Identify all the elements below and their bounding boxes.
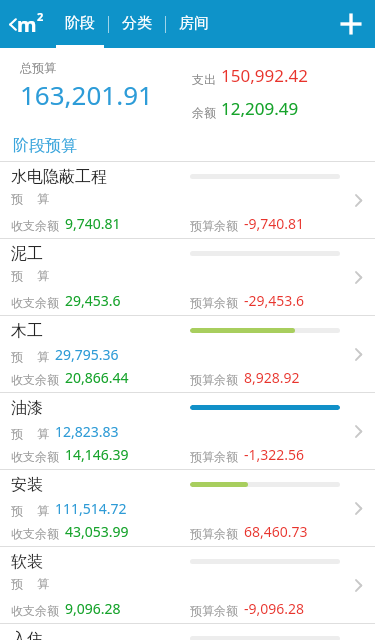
staticText: -9,096.28 (244, 599, 305, 618)
staticText: 算 (37, 268, 49, 283)
button[interactable]: 木工 (0, 316, 375, 392)
button[interactable]: 入住 (0, 624, 375, 640)
staticText: -9,740.81 (244, 214, 305, 233)
staticText: 软装 (11, 552, 43, 572)
button[interactable]: 阶段 (52, 0, 108, 48)
staticText: 预 (11, 426, 23, 441)
staticText: 水电隐蔽工程 (11, 167, 107, 187)
staticText: 预 (11, 349, 23, 364)
staticText: 支出 (192, 72, 216, 87)
staticText: 房间 (179, 14, 209, 33)
staticText: 算 (37, 576, 49, 591)
staticText: 12,209.49 (221, 97, 299, 120)
staticText: 8,928.92 (244, 368, 300, 387)
staticText: 总预算 (20, 60, 56, 75)
staticText: 预算余额 (190, 218, 238, 233)
staticText: 收支余额 (11, 449, 59, 464)
staticText: 预算余额 (190, 449, 238, 464)
button[interactable]: 油漆 (0, 393, 375, 469)
staticText: m (17, 11, 37, 38)
staticText: 9,096.28 (65, 599, 121, 618)
staticText: -29,453.6 (244, 291, 305, 310)
staticText: 收支余额 (11, 295, 59, 310)
staticText: 111,514.72 (55, 499, 127, 518)
staticText: 预算余额 (190, 372, 238, 387)
button[interactable]: 水电隐蔽工程 (0, 162, 375, 238)
staticText: 9,740.81 (65, 214, 121, 233)
button[interactable]: 分类 (109, 0, 165, 48)
staticText: 算 (37, 191, 49, 206)
button[interactable]: 安装 (0, 470, 375, 546)
staticText: 预 (11, 576, 23, 591)
staticText: 12,823.83 (55, 422, 119, 441)
staticText: -1,322.56 (244, 445, 305, 464)
staticText: 预算余额 (190, 603, 238, 618)
staticText: 安装 (11, 475, 43, 495)
staticText: 29,795.36 (55, 345, 119, 364)
staticText: 预 (11, 191, 23, 206)
staticText: 收支余额 (11, 603, 59, 618)
staticText: 163,201.91 (20, 77, 153, 112)
staticText: 20,866.44 (65, 368, 129, 387)
staticText: 收支余额 (11, 218, 59, 233)
staticText: 68,460.73 (244, 522, 308, 541)
staticText: 2 (37, 9, 44, 24)
staticText: 入住 (11, 629, 43, 640)
staticText: 余额 (192, 105, 216, 120)
button[interactable]: Add (327, 0, 375, 48)
staticText: 150,992.42 (221, 64, 308, 87)
staticText: 预算余额 (190, 295, 238, 310)
staticText: 算 (37, 503, 49, 518)
staticText: 预 (11, 503, 23, 518)
staticText: 木工 (11, 321, 43, 341)
staticText: 阶段 (65, 14, 95, 33)
staticText: 泥工 (11, 244, 43, 264)
staticText: 收支余额 (11, 372, 59, 387)
staticText: 收支余额 (11, 526, 59, 541)
button[interactable]: 泥工 (0, 239, 375, 315)
staticText: 油漆 (11, 398, 43, 418)
staticText: 14,146.39 (65, 445, 129, 464)
staticText: 43,053.99 (65, 522, 129, 541)
button[interactable]: 房间 (166, 0, 222, 48)
staticText: 预 (11, 268, 23, 283)
staticText: 分类 (122, 14, 152, 33)
staticText: 29,453.6 (65, 291, 121, 310)
staticText: 预算余额 (190, 526, 238, 541)
button[interactable]: 软装 (0, 547, 375, 623)
button[interactable]: Back (0, 0, 50, 48)
staticText: 算 (37, 349, 49, 364)
staticText: 算 (37, 426, 49, 441)
staticText: 阶段预算 (13, 136, 77, 156)
